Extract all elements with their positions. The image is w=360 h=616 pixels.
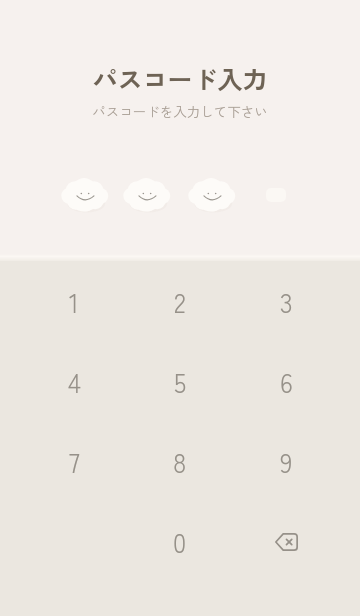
button[interactable]: 4 — [21, 342, 127, 422]
staticText: パスコード入力 — [92, 60, 268, 96]
other: Delete — [274, 533, 298, 551]
staticText: 5 — [174, 363, 187, 401]
button[interactable]: 5 — [127, 342, 233, 422]
button[interactable]: 8 — [127, 422, 233, 502]
button[interactable]: 6 — [233, 342, 339, 422]
staticText: 0 — [173, 523, 187, 561]
staticText: 3 — [280, 283, 293, 321]
staticText: 1 — [69, 283, 79, 321]
staticText: 9 — [280, 443, 293, 481]
button[interactable]: 0 — [127, 502, 233, 582]
button[interactable]: 7 — [21, 422, 127, 502]
button[interactable]: Delete — [233, 502, 339, 582]
staticText: 7 — [69, 443, 80, 481]
button[interactable]: 9 — [233, 422, 339, 502]
staticText: パスコードを入力して下さい — [92, 101, 268, 121]
staticText: 2 — [174, 283, 186, 321]
staticText: 4 — [68, 363, 81, 401]
staticText: 8 — [173, 443, 187, 481]
button[interactable]: 1 — [21, 262, 127, 342]
button[interactable]: 3 — [233, 262, 339, 342]
staticText: 6 — [280, 363, 293, 401]
button[interactable]: 2 — [127, 262, 233, 342]
